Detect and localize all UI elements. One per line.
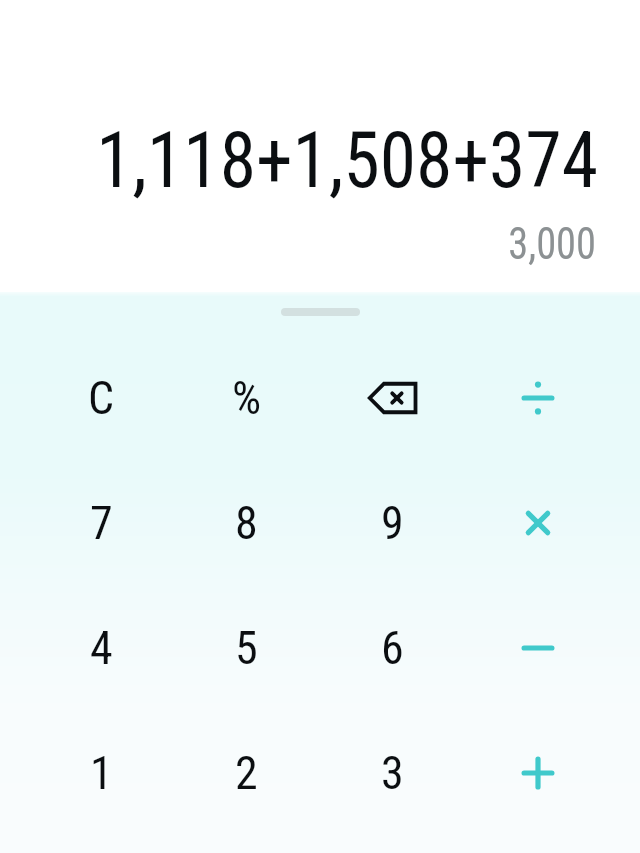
staticText: 8 [235,496,258,550]
staticText: 7 [90,496,113,550]
button[interactable]: 6 [319,585,465,710]
button[interactable]: 2 [174,710,319,835]
button[interactable]: 4 [29,585,174,710]
button[interactable]: Divide [465,335,611,460]
staticText: 1,118+1,508+374 [96,115,598,206]
staticText: 9 [381,496,404,550]
button[interactable]: 3 [319,710,465,835]
staticText: 3 [381,746,404,800]
staticText: % [232,371,262,425]
button[interactable]: 8 [174,460,319,585]
staticText: 1 [90,746,113,800]
staticText: 2 [235,746,258,800]
button[interactable]: 7 [29,460,174,585]
staticText: 5 [235,621,258,675]
button[interactable]: C [29,335,174,460]
button[interactable]: Add [465,710,611,835]
staticText: 4 [90,621,113,675]
button[interactable]: 9 [319,460,465,585]
staticText: 3,000 [508,217,596,270]
button[interactable]: 5 [174,585,319,710]
button[interactable]: Backspace [319,335,465,460]
button[interactable]: Subtract [465,585,611,710]
button[interactable]: 1 [29,710,174,835]
staticText: 6 [381,621,404,675]
button[interactable]: Multiply [465,460,611,585]
button[interactable]: % [174,335,319,460]
staticText: C [88,371,115,425]
